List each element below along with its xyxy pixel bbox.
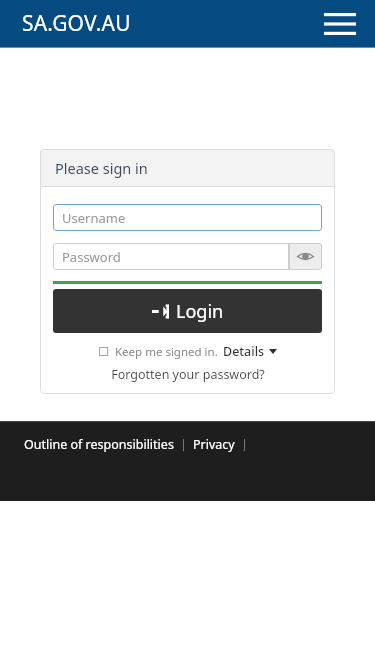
staticText: Please sign in [55, 158, 148, 178]
button[interactable]: Privacy [193, 436, 235, 453]
staticText: Keep me signed in. [115, 344, 218, 360]
button[interactable]: Username [53, 204, 322, 231]
staticText: Username [62, 209, 126, 227]
button[interactable]: SA.GOV.AU [22, 9, 131, 38]
button[interactable]: Outline of responsibilities [24, 436, 174, 453]
staticText: Login [176, 299, 224, 324]
staticText: Details [223, 343, 265, 360]
staticText: Password [62, 248, 121, 266]
button[interactable]: Login [53, 289, 322, 333]
button[interactable]: Keep me signed in [99, 347, 108, 356]
button[interactable]: Details [223, 343, 277, 360]
button[interactable]: Open menu [323, 9, 357, 39]
button[interactable]: Password [53, 243, 289, 270]
button[interactable]: Show password [289, 243, 322, 270]
button[interactable]: Forgotten your password? [111, 366, 265, 383]
